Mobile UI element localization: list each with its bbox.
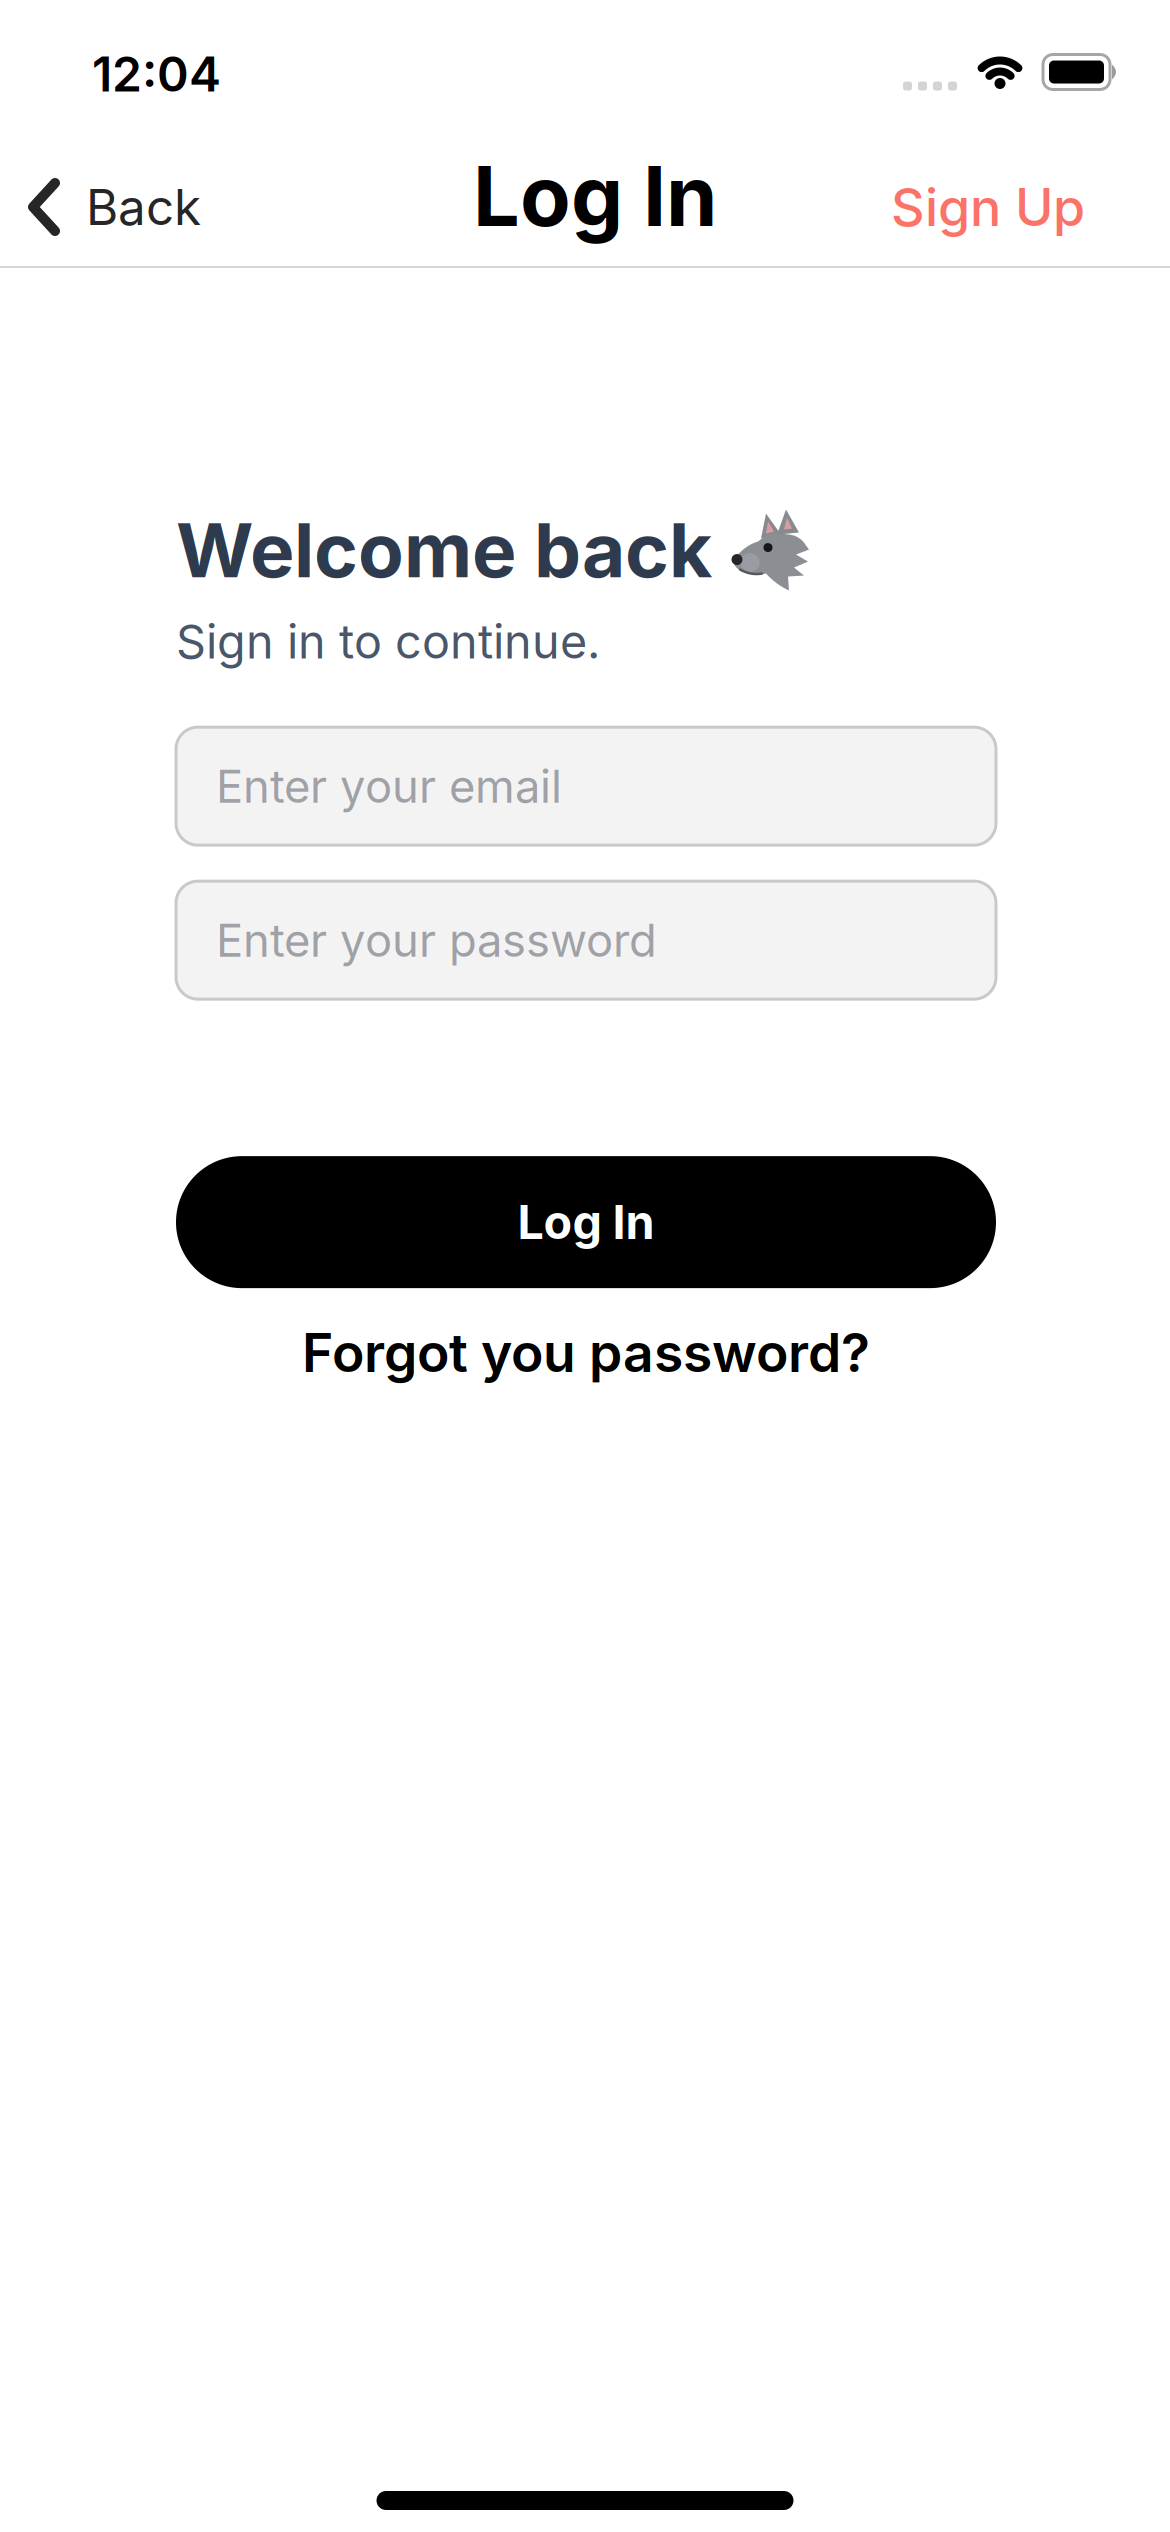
button[interactable]: Log In	[176, 1156, 996, 1288]
button[interactable]: Back	[0, 162, 201, 236]
staticText: 12:04	[92, 46, 221, 102]
staticText: Enter your email	[216, 759, 562, 813]
staticText: Back	[86, 178, 201, 236]
staticText: Sign Up	[891, 176, 1085, 238]
staticText: Enter your password	[216, 913, 657, 967]
button[interactable]: Forgot you password?	[176, 1321, 996, 1384]
staticText: Welcome back	[176, 506, 712, 594]
staticText: Forgot you password?	[302, 1321, 870, 1384]
button[interactable]: Enter your password	[176, 881, 996, 999]
staticText: Sign in to continue.	[176, 614, 600, 669]
button[interactable]: Sign Up	[891, 160, 1170, 238]
button[interactable]: Enter your email	[176, 727, 996, 845]
staticText: Log In	[473, 147, 717, 245]
staticText: Log In	[517, 1195, 654, 1250]
